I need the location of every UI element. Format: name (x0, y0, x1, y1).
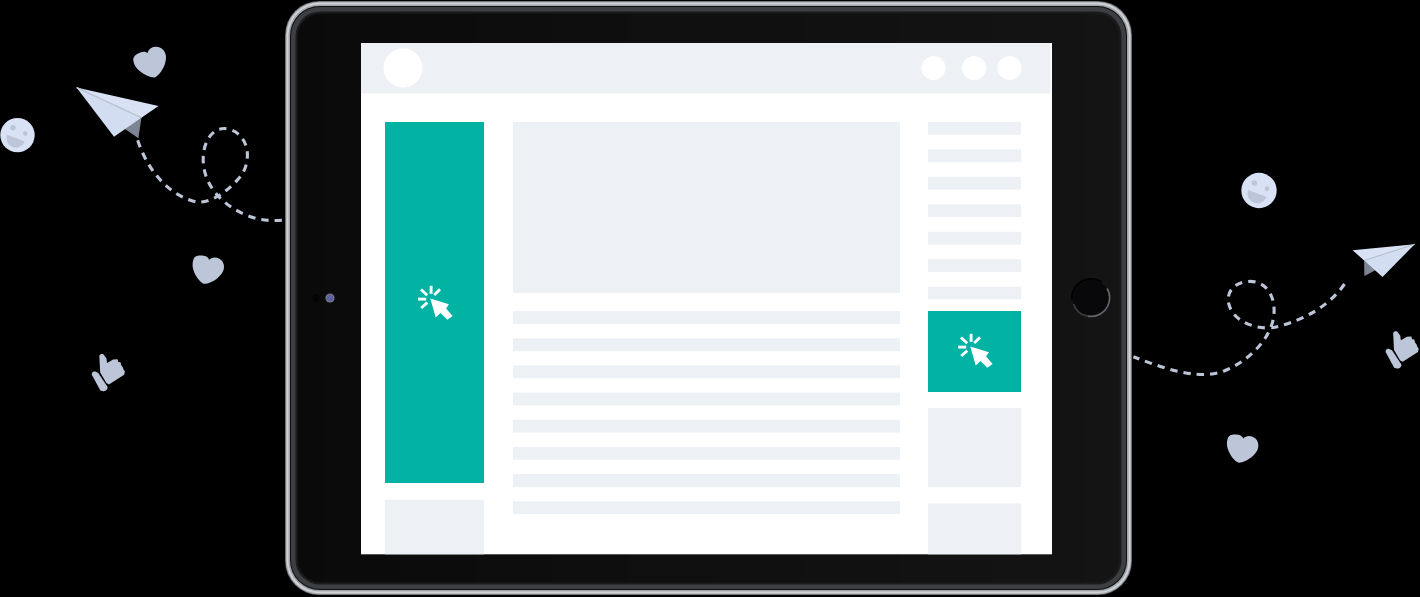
button[interactable]: Tablet app illustration (0, 0, 1420, 597)
